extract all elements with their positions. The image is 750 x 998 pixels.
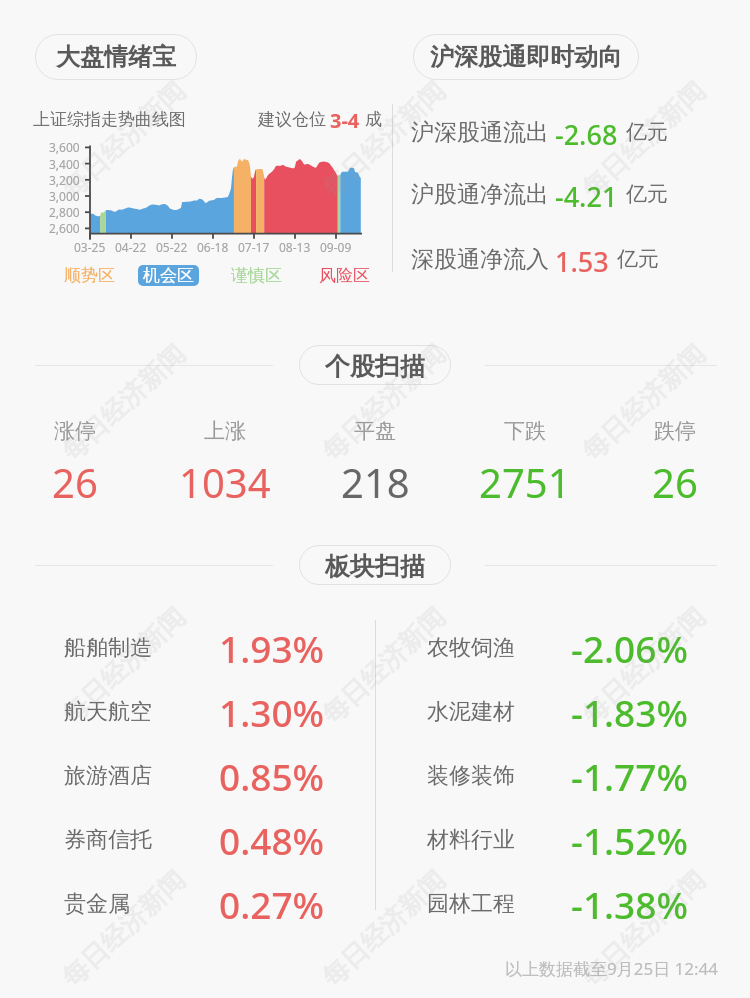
staticText: 成 (365, 109, 382, 130)
staticText: 06-18 (197, 239, 229, 255)
staticText: 每日经济新闻 (55, 863, 192, 994)
button[interactable]: 贵金属 (64, 872, 325, 936)
staticText: -2.68 (555, 116, 618, 148)
staticText: 以上数据截至9月25日 12:44 (505, 957, 719, 980)
button[interactable]: 沪股通净流出 (411, 178, 668, 210)
staticText: 218 (341, 455, 410, 509)
staticText: 3,200 (49, 172, 80, 188)
staticText: 03-25 (74, 239, 106, 255)
staticText: -1.52% (571, 815, 688, 865)
staticText: 3,600 (49, 139, 80, 155)
staticText: 园林工程 (427, 890, 515, 918)
staticText: 上涨 (204, 418, 246, 444)
staticText: 下跌 (504, 418, 546, 444)
staticText: 2,800 (49, 204, 80, 220)
button[interactable]: 园林工程 (427, 872, 688, 936)
button[interactable]: 谨慎区 (231, 265, 282, 286)
button[interactable]: 机会区 (138, 265, 199, 286)
staticText: 上证综指走势曲线图 (33, 109, 186, 130)
staticText: 装修装饰 (427, 762, 515, 790)
staticText: 涨停 (54, 418, 96, 444)
staticText: 每日经济新闻 (315, 337, 452, 468)
staticText: 0.85% (219, 751, 325, 801)
staticText: 沪股通净流出 (411, 180, 549, 209)
staticText: 亿元 (626, 119, 668, 145)
button[interactable]: 装修装饰 (427, 744, 688, 808)
staticText: 每日经济新闻 (315, 863, 452, 994)
staticText: 沪深股通即时动向 (430, 42, 622, 72)
staticText: 每日经济新闻 (575, 863, 712, 994)
staticText: 板块扫描 (325, 551, 425, 579)
staticText: 贵金属 (64, 890, 130, 918)
staticText: 个股扫描 (325, 351, 425, 379)
button[interactable]: 深股通净流入 (411, 243, 659, 275)
staticText: -1.77% (571, 751, 688, 801)
staticText: 亿元 (626, 181, 668, 207)
staticText: 1.93% (219, 623, 325, 673)
staticText: 3,400 (49, 156, 80, 172)
staticText: 04-22 (115, 239, 147, 255)
staticText: 风险区 (319, 265, 370, 286)
staticText: 26 (652, 455, 698, 509)
button[interactable]: 船舶制造 (64, 616, 325, 680)
staticText: 材料行业 (427, 826, 515, 854)
staticText: 券商信托 (64, 826, 152, 854)
staticText: 0.48% (219, 815, 325, 865)
staticText: 每日经济新闻 (575, 600, 712, 731)
staticText: 农牧饲渔 (427, 634, 515, 662)
staticText: 09-09 (320, 239, 352, 255)
button[interactable]: 板块扫描 (325, 551, 425, 579)
staticText: -1.83% (571, 687, 688, 737)
staticText: 旅游酒店 (64, 762, 152, 790)
staticText: 顺势区 (64, 265, 115, 286)
staticText: 3-4 (330, 107, 360, 131)
button[interactable]: 下跌 (450, 418, 600, 509)
button[interactable]: 旅游酒店 (64, 744, 325, 808)
button[interactable]: 沪深股通即时动向 (430, 42, 622, 72)
staticText: 每日经济新闻 (315, 74, 452, 205)
staticText: 每日经济新闻 (55, 74, 192, 205)
button[interactable]: 券商信托 (64, 808, 325, 872)
staticText: 每日经济新闻 (55, 600, 192, 731)
staticText: 每日经济新闻 (55, 337, 192, 468)
staticText: -2.06% (571, 623, 688, 673)
button[interactable]: 跌停 (600, 418, 750, 509)
button[interactable]: 沪深股通流出 (411, 116, 668, 148)
staticText: 26 (52, 455, 98, 509)
button[interactable]: 水泥建材 (427, 680, 688, 744)
staticText: -1.38% (571, 879, 688, 929)
staticText: 2751 (479, 455, 571, 509)
button[interactable]: 顺势区 (64, 265, 115, 286)
staticText: 2,600 (49, 220, 80, 236)
button[interactable]: 风险区 (319, 265, 370, 286)
staticText: 每日经济新闻 (315, 600, 452, 731)
staticText: 大盘情绪宝 (56, 42, 176, 72)
staticText: 08-13 (279, 239, 311, 255)
staticText: 航天航空 (64, 698, 152, 726)
staticText: 每日经济新闻 (575, 337, 712, 468)
staticText: 机会区 (143, 265, 194, 286)
button[interactable]: 涨停 (0, 418, 150, 509)
staticText: 0.27% (219, 879, 325, 929)
staticText: 谨慎区 (231, 265, 282, 286)
staticText: 每日经济新闻 (575, 74, 712, 205)
staticText: 07-17 (238, 239, 270, 255)
staticText: 亿元 (617, 246, 659, 272)
staticText: 1034 (179, 455, 271, 509)
button[interactable]: 个股扫描 (325, 351, 425, 379)
staticText: 跌停 (654, 418, 696, 444)
staticText: 1.30% (219, 687, 325, 737)
staticText: 1.53 (555, 243, 609, 275)
button[interactable]: 平盘 (300, 418, 450, 509)
staticText: 水泥建材 (427, 698, 515, 726)
staticText: 船舶制造 (64, 634, 152, 662)
button[interactable]: 农牧饲渔 (427, 616, 688, 680)
staticText: -4.21 (555, 178, 618, 210)
button[interactable]: 上涨 (150, 418, 300, 509)
staticText: 深股通净流入 (411, 245, 549, 274)
button[interactable]: 大盘情绪宝 (56, 42, 176, 72)
button[interactable]: 航天航空 (64, 680, 325, 744)
button[interactable]: 材料行业 (427, 808, 688, 872)
staticText: 平盘 (354, 418, 396, 444)
staticText: 沪深股通流出 (411, 118, 549, 147)
